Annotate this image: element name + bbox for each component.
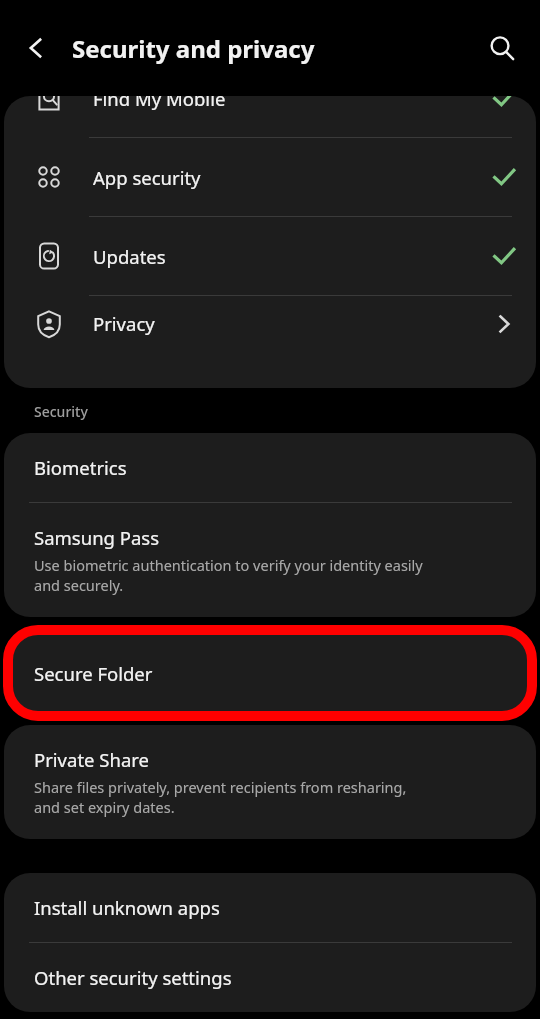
- button[interactable]: Install unknown apps: [4, 873, 536, 942]
- staticText: Secure Folder: [34, 661, 153, 686]
- staticText: Updates: [93, 244, 166, 269]
- staticText: Security and privacy: [72, 32, 315, 65]
- button[interactable]: Privacy: [4, 296, 536, 351]
- staticText: Security: [34, 402, 88, 421]
- button[interactable]: Secure Folder: [4, 630, 536, 716]
- button[interactable]: Biometrics: [4, 433, 536, 502]
- button[interactable]: Search: [464, 0, 540, 96]
- staticText: Find My Mobile: [93, 96, 226, 111]
- staticText: Other security settings: [34, 965, 232, 990]
- button[interactable]: Other security settings: [4, 943, 536, 1012]
- button[interactable]: Updates: [4, 217, 536, 295]
- button[interactable]: Samsung Pass: [4, 503, 536, 617]
- staticText: Share files privately, prevent recipient…: [34, 777, 407, 817]
- staticText: Use biometric authentication to verify y…: [34, 555, 423, 595]
- staticText: Private Share: [34, 747, 149, 772]
- button[interactable]: Back: [0, 0, 72, 96]
- staticText: Biometrics: [34, 455, 127, 480]
- button[interactable]: Find My Mobile: [4, 96, 536, 137]
- staticText: Install unknown apps: [34, 895, 220, 920]
- button[interactable]: Private Share: [4, 725, 536, 839]
- staticText: Privacy: [93, 311, 155, 336]
- button[interactable]: App security: [4, 138, 536, 216]
- staticText: App security: [93, 165, 201, 190]
- staticText: Samsung Pass: [34, 525, 160, 550]
